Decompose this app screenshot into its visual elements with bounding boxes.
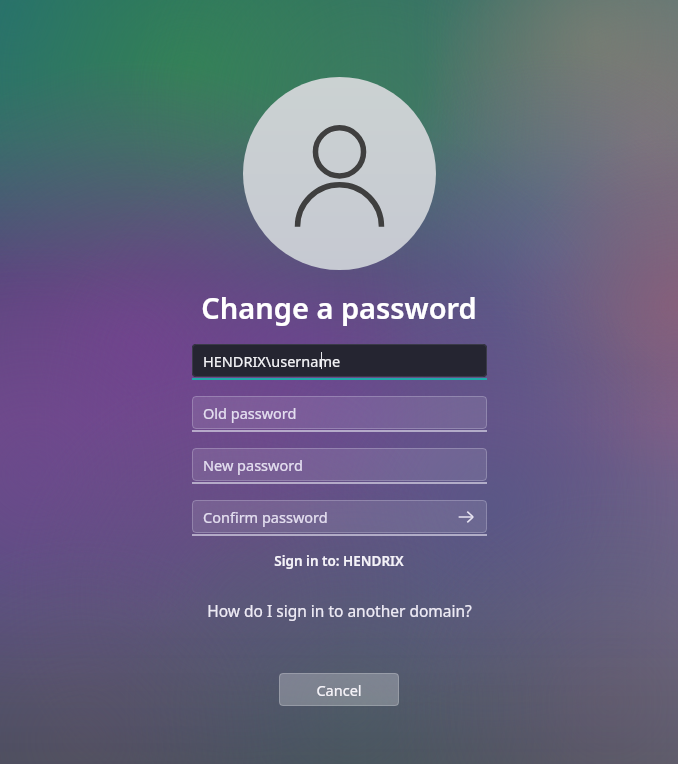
button[interactable]: HENDRIX\username (192, 344, 487, 380)
staticText: Sign in to: HENDRIX (274, 552, 404, 570)
staticText: How do I sign in to another domain? (207, 600, 472, 621)
button[interactable]: Old password (192, 396, 487, 432)
staticText: Old password (203, 403, 297, 423)
button[interactable]: Confirm password (192, 500, 487, 536)
staticText: Confirm password (203, 507, 328, 527)
button[interactable]: New password (192, 448, 487, 484)
button[interactable]: Cancel (279, 673, 399, 706)
staticText: HENDRIX\username (203, 351, 341, 371)
button[interactable]: Submit (453, 504, 479, 530)
staticText: Change a password (201, 288, 477, 327)
button[interactable]: How do I sign in to another domain? (201, 596, 478, 625)
staticText: Cancel (316, 680, 362, 700)
staticText: New password (203, 455, 303, 475)
